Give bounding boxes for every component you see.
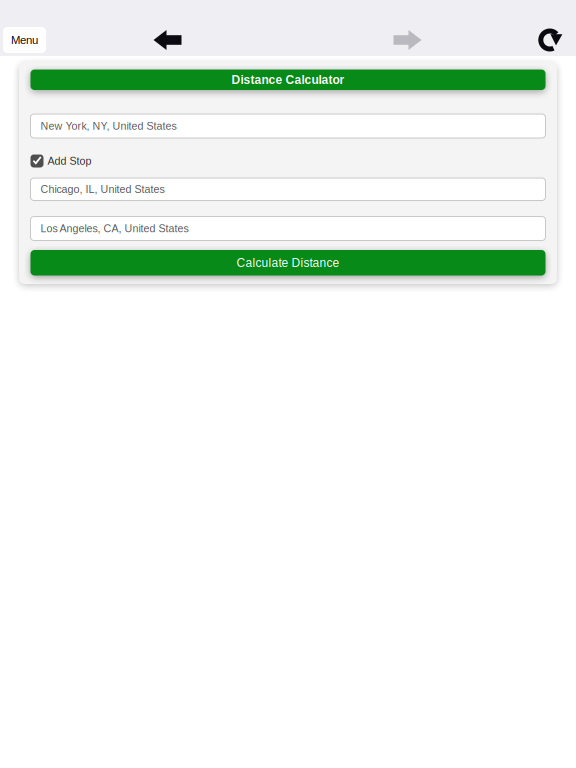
- button[interactable]: Menu: [3, 27, 46, 53]
- staticText: Add Stop: [47, 155, 91, 167]
- button[interactable]: Add Stop: [30, 154, 545, 167]
- staticText: Chicago, IL, United States: [40, 183, 164, 195]
- staticText: Menu: [11, 34, 38, 46]
- button[interactable]: Distance Calculator: [30, 69, 545, 90]
- staticText: New York, NY, United States: [40, 120, 176, 132]
- button[interactable]: New York, NY, United States: [30, 114, 545, 138]
- button[interactable]: Los Angeles, CA, United States: [30, 216, 545, 240]
- button[interactable]: Reload: [538, 28, 564, 52]
- staticText: Calculate Distance: [236, 256, 339, 269]
- staticText: Distance Calculator: [231, 73, 344, 86]
- button[interactable]: Chicago, IL, United States: [30, 178, 545, 200]
- button[interactable]: Back: [153, 30, 181, 50]
- button[interactable]: Forward: [393, 30, 421, 50]
- button[interactable]: Calculate Distance: [30, 250, 545, 275]
- staticText: Los Angeles, CA, United States: [40, 222, 188, 234]
